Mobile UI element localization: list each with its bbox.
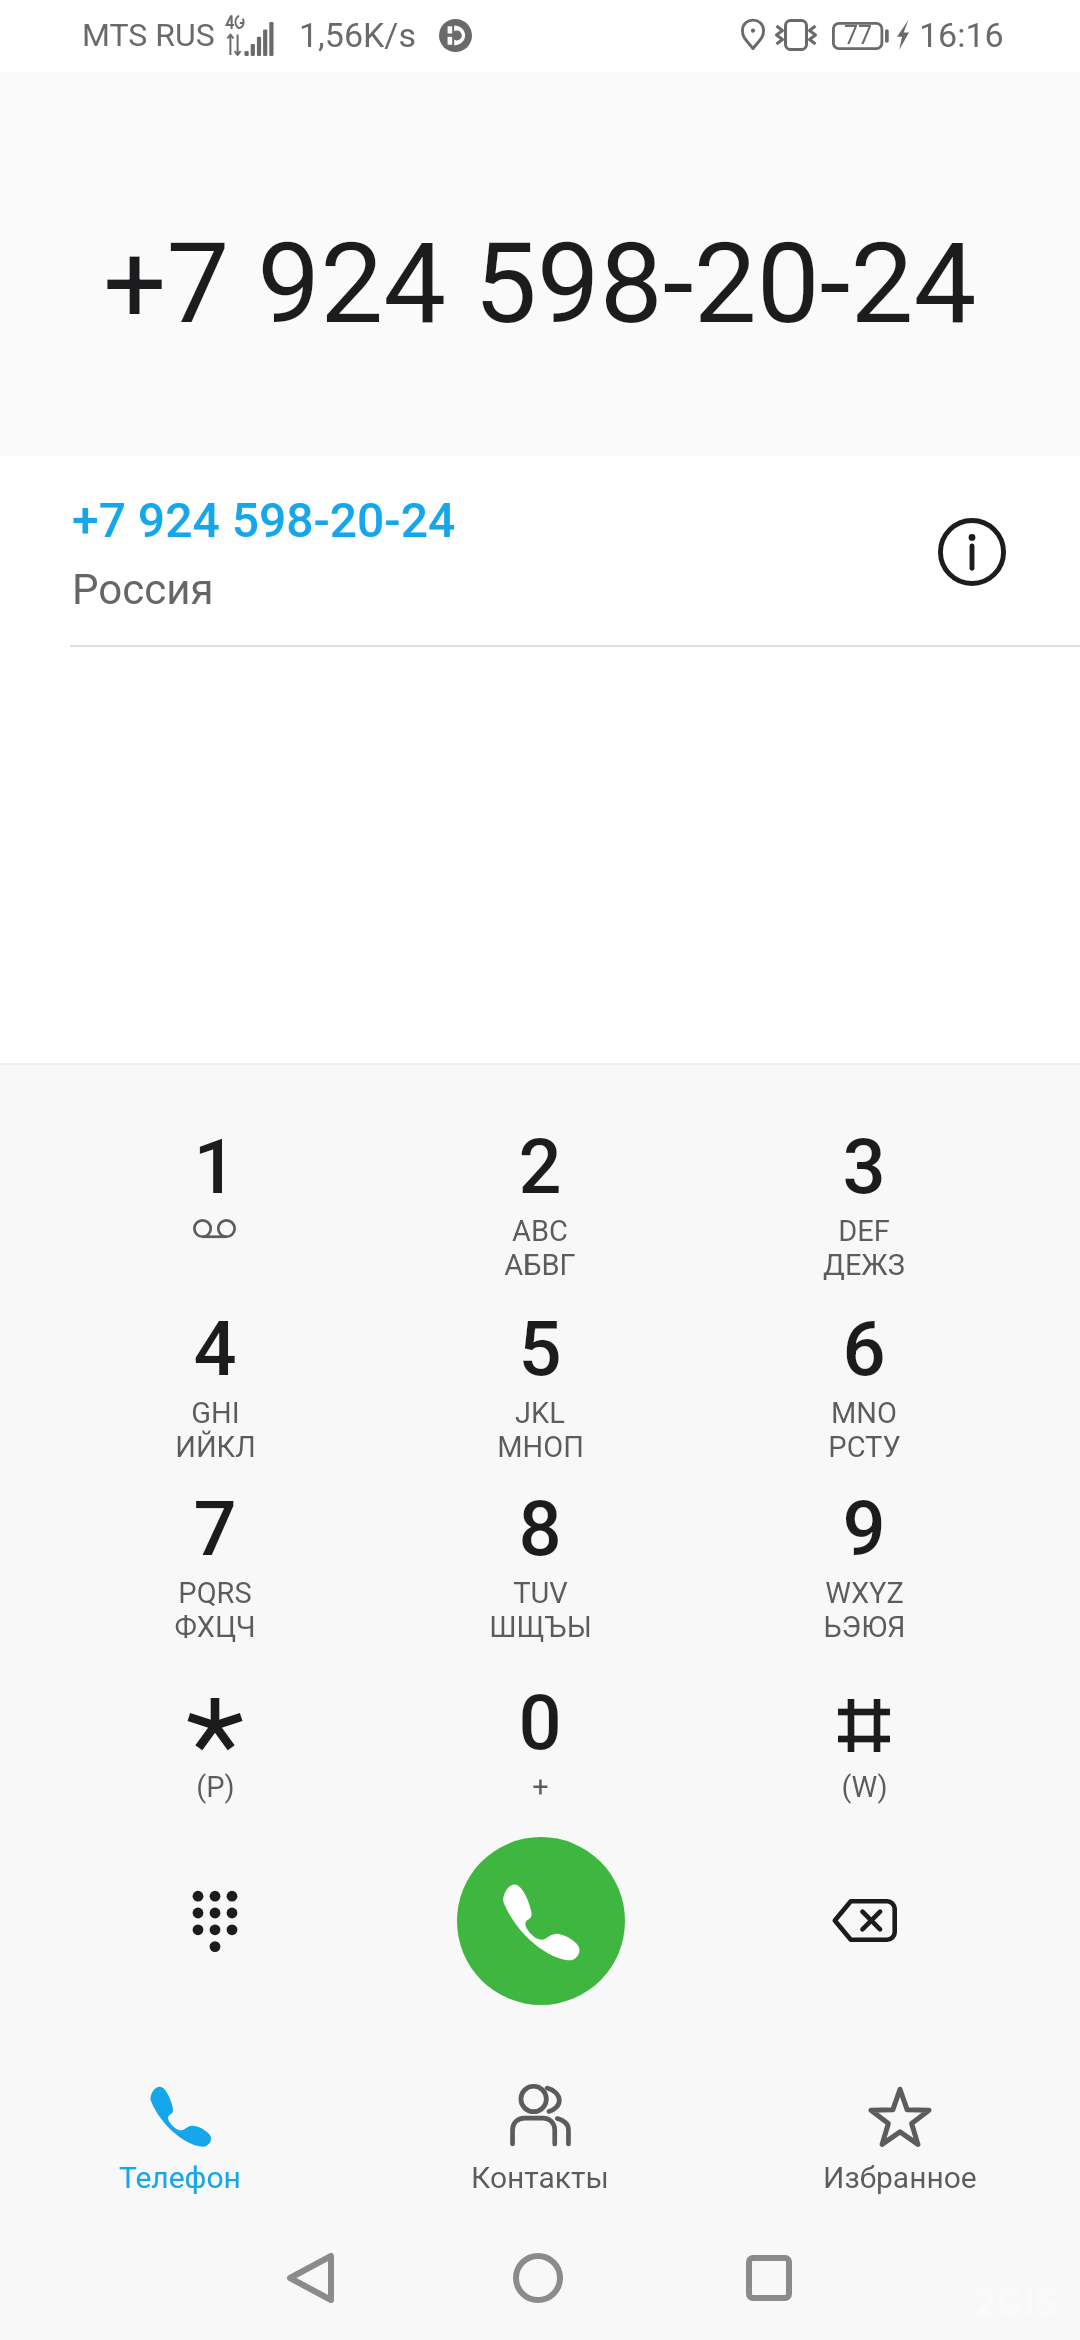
staticText: ЬЭЮЯ <box>823 1610 906 1644</box>
button[interactable]: Избранное <box>720 2060 1080 2210</box>
staticText: ИЙКЛ <box>175 1430 256 1464</box>
staticText: Избранное <box>823 2160 977 2195</box>
button[interactable]: 3 <box>702 1097 1026 1277</box>
staticText: АБВГ <box>504 1248 576 1282</box>
staticText: (P) <box>196 1770 235 1804</box>
staticText: 9 <box>842 1484 886 1573</box>
staticText: 6 <box>842 1304 886 1393</box>
button[interactable]: 2 <box>378 1097 702 1277</box>
button[interactable]: 7 <box>53 1459 377 1639</box>
button[interactable]: 0 <box>378 1653 702 1833</box>
button[interactable]: 1 <box>53 1097 377 1277</box>
staticText: Контакты <box>471 2160 609 2195</box>
button[interactable]: Call <box>457 1837 625 2005</box>
staticText: WXYZ <box>825 1576 904 1610</box>
staticText: 0 <box>518 1678 562 1767</box>
staticText: MNO <box>831 1396 897 1430</box>
staticText: 2 <box>518 1122 562 1211</box>
staticText: 3 <box>842 1122 886 1211</box>
button[interactable]: Info <box>912 492 1032 612</box>
button[interactable]: Контакты <box>360 2060 720 2210</box>
button[interactable]: 5 <box>378 1279 702 1459</box>
staticText: 77 <box>844 21 873 50</box>
button[interactable]: 9 <box>702 1459 1026 1639</box>
staticText: Россия <box>72 565 214 614</box>
button[interactable]: # <box>702 1653 1026 1833</box>
staticText: ДЕЖЗ <box>823 1248 905 1282</box>
staticText: 4 <box>193 1304 237 1393</box>
staticText: Телефон <box>119 2160 241 2195</box>
button[interactable]: 8 <box>378 1459 702 1639</box>
button[interactable]: * <box>53 1653 377 1833</box>
staticText: 5 <box>518 1304 562 1393</box>
staticText: (W) <box>841 1770 888 1804</box>
button[interactable]: Recents <box>659 2215 879 2340</box>
staticText: 1,56K/s <box>299 15 416 55</box>
staticText: 7 <box>193 1484 237 1573</box>
staticText: ABC <box>512 1214 568 1248</box>
button[interactable]: Back <box>200 2215 420 2340</box>
staticText: + <box>532 1770 549 1804</box>
staticText: +7 924 598-20-24 <box>103 218 977 349</box>
button[interactable]: +7 924 598-20-24 <box>0 456 1080 646</box>
staticText: PQRS <box>178 1576 252 1610</box>
staticText: МНОП <box>497 1430 584 1464</box>
button[interactable]: 4 <box>53 1279 377 1459</box>
staticText: DEF <box>838 1214 890 1248</box>
staticText: MTS RUS <box>82 16 215 54</box>
staticText: 8 <box>518 1484 562 1573</box>
staticText: TUV <box>513 1576 568 1610</box>
staticText: +7 924 598-20-24 <box>72 492 456 548</box>
staticText: ШЩЪЫ <box>489 1610 592 1644</box>
button[interactable]: 6 <box>702 1279 1026 1459</box>
button[interactable]: Hide keypad <box>115 1826 315 2006</box>
staticText: GHI <box>191 1396 240 1430</box>
staticText: РСТУ <box>828 1430 901 1464</box>
staticText: JKL <box>515 1396 565 1430</box>
staticText: 1 <box>193 1122 237 1211</box>
button[interactable]: Телефон <box>0 2060 360 2210</box>
staticText: 16:16 <box>919 15 1004 55</box>
button[interactable]: Home <box>428 2215 648 2340</box>
button[interactable]: Backspace <box>764 1830 964 2010</box>
staticText: ФХЦЧ <box>174 1610 256 1644</box>
